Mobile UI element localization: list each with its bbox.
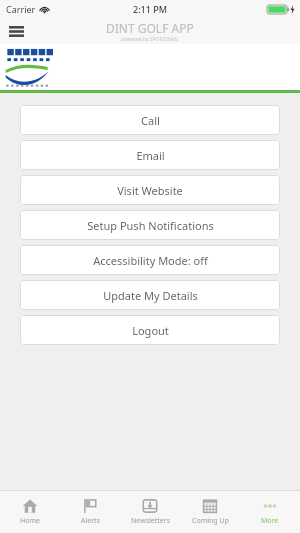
staticText: Accessibility Mode: off bbox=[93, 253, 208, 268]
button[interactable]: Newsletters bbox=[120, 491, 180, 533]
button[interactable]: Alerts bbox=[60, 491, 120, 533]
button[interactable]: Menu bbox=[3, 18, 29, 44]
button[interactable]: Visit Website bbox=[20, 175, 280, 205]
button[interactable]: Update My Details bbox=[20, 280, 280, 310]
staticText: Carrier bbox=[6, 3, 36, 15]
staticText: powered by SPORTSBAG bbox=[121, 36, 179, 43]
button[interactable]: Coming Up bbox=[180, 491, 240, 533]
staticText: Email bbox=[136, 148, 165, 163]
staticText: Alerts bbox=[81, 516, 100, 526]
button[interactable]: Call bbox=[20, 105, 280, 135]
staticText: Logout bbox=[132, 323, 169, 338]
staticText: More bbox=[261, 516, 279, 526]
button[interactable]: Setup Push Notifications bbox=[20, 210, 280, 240]
button[interactable]: More bbox=[240, 491, 300, 533]
staticText: Visit Website bbox=[117, 183, 183, 198]
button[interactable]: Accessibility Mode: off bbox=[20, 245, 280, 275]
button[interactable]: Logout bbox=[20, 315, 280, 345]
staticText: Newsletters bbox=[131, 516, 170, 526]
staticText: Home bbox=[20, 516, 40, 526]
staticText: Call bbox=[141, 113, 160, 128]
staticText: 2:11 PM bbox=[133, 3, 167, 15]
staticText: Setup Push Notifications bbox=[87, 218, 214, 233]
staticText: DINT GOLF APP bbox=[106, 20, 194, 36]
button[interactable]: Email bbox=[20, 140, 280, 170]
button[interactable]: Home bbox=[0, 491, 60, 533]
staticText: Coming Up bbox=[192, 516, 229, 526]
staticText: Update My Details bbox=[103, 288, 198, 303]
